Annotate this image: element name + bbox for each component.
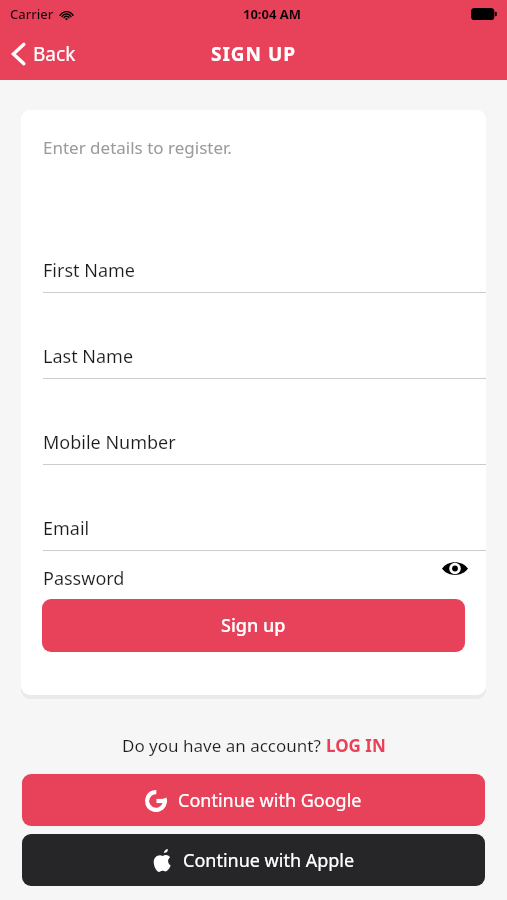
button[interactable]: First Name bbox=[21, 207, 486, 293]
button[interactable]: Show password bbox=[438, 551, 472, 585]
staticText: Do you have an account? bbox=[122, 734, 326, 757]
staticText: Enter details to register. bbox=[43, 136, 232, 159]
staticText: Back bbox=[33, 41, 76, 67]
button[interactable]: Last Name bbox=[21, 293, 486, 379]
button[interactable]: Mobile Number bbox=[21, 379, 486, 465]
staticText: 10:04 AM bbox=[243, 5, 302, 23]
staticText: Last Name bbox=[43, 344, 134, 369]
button[interactable]: Continue with Apple bbox=[22, 834, 485, 886]
button[interactable]: Email bbox=[21, 465, 486, 551]
button[interactable]: Sign up bbox=[42, 599, 465, 652]
staticText: LOG IN bbox=[326, 734, 386, 757]
staticText: First Name bbox=[43, 258, 135, 283]
staticText: Carrier bbox=[10, 5, 54, 23]
button[interactable]: Continue with Google bbox=[22, 774, 485, 826]
staticText: Continue with Google bbox=[178, 788, 362, 813]
button[interactable]: Back bbox=[0, 33, 90, 75]
button[interactable]: LOG IN bbox=[326, 734, 386, 757]
staticText: Continue with Apple bbox=[183, 848, 355, 873]
staticText: SIGN UP bbox=[211, 41, 297, 67]
staticText: Sign up bbox=[221, 613, 286, 638]
button[interactable]: Password bbox=[21, 551, 486, 599]
staticText: Password bbox=[43, 566, 125, 591]
staticText: Mobile Number bbox=[43, 430, 176, 455]
staticText: Email bbox=[43, 516, 90, 541]
